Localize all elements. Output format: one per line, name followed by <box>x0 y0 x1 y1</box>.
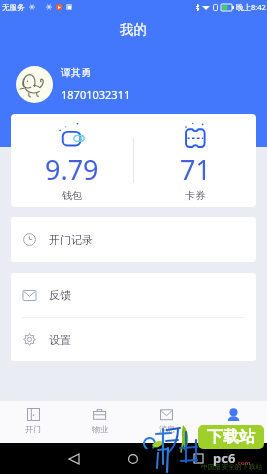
staticText: 71 <box>180 151 211 188</box>
staticText: 我的 <box>226 424 242 434</box>
other: Home <box>128 454 138 464</box>
button[interactable]: 反馈 <box>11 273 256 317</box>
staticText: 反馈 <box>49 288 71 302</box>
staticText: 9.79 <box>45 151 99 188</box>
button[interactable]: 71 <box>134 114 256 207</box>
staticText: 18701032311 <box>61 87 131 102</box>
staticText: 中国最安全的下载站 <box>201 462 263 471</box>
staticText: 卡券 <box>185 189 205 202</box>
button[interactable]: 开门 <box>0 401 66 443</box>
other: Back <box>69 454 79 464</box>
staticText: 开门 <box>25 424 41 434</box>
staticText: 我的 <box>120 21 147 38</box>
button[interactable]: 消息 <box>133 401 200 443</box>
button[interactable]: 物业 <box>66 401 133 443</box>
staticText: 物业 <box>92 424 108 434</box>
staticText: 开门记录 <box>49 233 93 247</box>
staticText: 谭其勇 <box>61 66 91 79</box>
other: Recents <box>194 454 203 463</box>
staticText: .com <box>236 459 251 467</box>
staticText: pc6 <box>213 449 236 467</box>
staticText: 设置 <box>49 333 71 347</box>
button[interactable]: 开门记录 <box>11 217 256 262</box>
staticText: 钱包 <box>62 189 82 202</box>
staticText: 下载站 <box>207 427 255 447</box>
staticText: 消息 <box>159 424 175 434</box>
button[interactable]: 我的 <box>200 401 267 443</box>
button[interactable]: 设置 <box>11 318 256 361</box>
button[interactable]: 谭其勇 <box>0 64 267 104</box>
staticText: 晚上8:42 <box>236 2 266 12</box>
button[interactable]: 9.79 <box>11 114 133 207</box>
staticText: 无服务 <box>2 3 25 12</box>
